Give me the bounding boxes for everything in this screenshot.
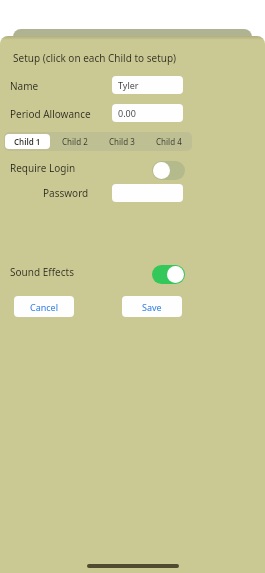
button[interactable]: Child 4: [146, 134, 191, 149]
staticText: Sound Effects: [10, 265, 74, 279]
staticText: Cancel: [30, 301, 59, 313]
staticText: Tyler: [118, 79, 139, 91]
staticText: Setup (click on each Child to setup): [13, 51, 177, 65]
staticText: Child 3: [109, 136, 135, 147]
button[interactable]: Cancel: [14, 296, 74, 317]
staticText: Name: [10, 79, 39, 93]
staticText: Password: [43, 186, 89, 200]
button[interactable]: Text field: [112, 184, 183, 202]
staticText: Child 1: [14, 136, 41, 147]
staticText: Period Allowance: [10, 107, 91, 121]
button[interactable]: Sound Effects toggle: [152, 265, 185, 284]
button[interactable]: Child 2: [52, 134, 97, 149]
staticText: 0.00: [118, 107, 136, 119]
button[interactable]: Text field: [112, 76, 183, 94]
button[interactable]: Child 3: [99, 134, 144, 149]
button[interactable]: Save: [122, 296, 182, 317]
staticText: Save: [142, 301, 162, 313]
button[interactable]: Require Login toggle: [152, 161, 185, 180]
staticText: Child 4: [156, 136, 182, 147]
button[interactable]: Text field: [112, 104, 183, 122]
staticText: Child 2: [62, 136, 88, 147]
staticText: Require Login: [10, 161, 76, 175]
button[interactable]: Child 1: [5, 134, 50, 149]
